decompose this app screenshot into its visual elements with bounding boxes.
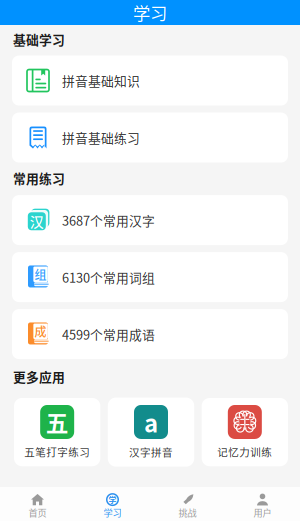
staticText: 学 [108,494,116,505]
staticText: 用户 [253,506,271,519]
button[interactable]: a [108,398,194,467]
button[interactable]: 首页 [0,487,75,521]
staticText: 首页 [28,506,46,519]
staticText: 6130个常用词组 [62,268,155,286]
staticText: 组 [35,266,47,283]
button[interactable]: 拼音基础练习 [12,112,288,162]
staticText: 4599个常用成语 [62,325,155,343]
button[interactable]: 挑战 [150,487,225,521]
button[interactable]: 汉 [12,195,288,245]
staticText: 学习 [133,0,167,25]
button[interactable]: 组 [12,252,288,302]
staticText: 记忆力训练 [217,444,272,459]
staticText: 五笔打字练习 [24,444,90,459]
staticText: 基础学习 [13,30,65,48]
staticText: 3687个常用汉字 [62,211,155,229]
staticText: 汉字拼音 [129,444,173,460]
staticText: 拼音基础练习 [62,128,140,147]
button[interactable]: 成 [12,309,288,359]
button[interactable]: 拼音基础知识 [12,55,288,105]
button[interactable]: 记忆力训练 [202,398,288,466]
button[interactable]: 五 [14,398,100,466]
staticText: a [144,405,158,439]
button[interactable]: 用户 [225,487,300,521]
staticText: 常用练习 [13,168,65,187]
staticText: 汉 [30,211,44,231]
staticText: 学习 [103,506,121,519]
staticText: 成 [35,323,47,340]
staticText: 更多应用 [13,367,65,386]
staticText: 拼音基础知识 [62,71,140,90]
staticText: 挑战 [178,506,196,519]
staticText: 五 [46,406,69,438]
button[interactable]: 学 [75,487,150,521]
